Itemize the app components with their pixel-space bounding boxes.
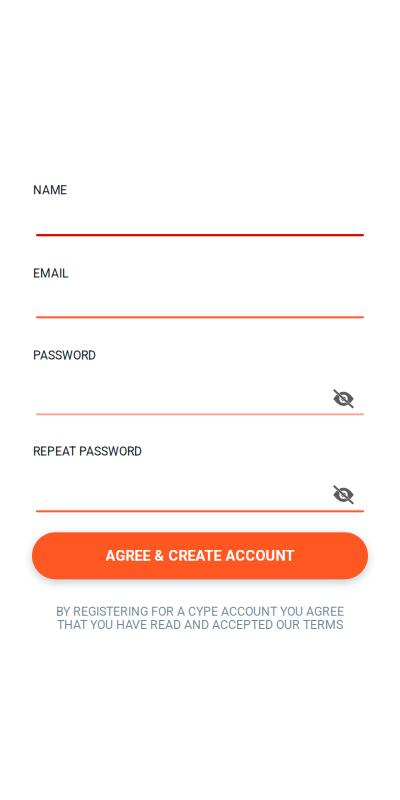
staticText: REPEAT PASSWORD bbox=[33, 444, 142, 458]
button[interactable]: REPEAT PASSWORD bbox=[36, 444, 364, 485]
staticText: BY REGISTERING FOR A CYPE ACCOUNT YOU AG… bbox=[56, 604, 344, 619]
button[interactable]: AGREE & CREATE ACCOUNT bbox=[32, 532, 368, 579]
staticText: NAME bbox=[33, 183, 67, 197]
button[interactable]: NAME bbox=[36, 183, 364, 236]
staticText: AGREE & CREATE ACCOUNT bbox=[105, 547, 294, 564]
button[interactable]: PASSWORD bbox=[36, 348, 364, 389]
button[interactable]: Show repeat password bbox=[321, 480, 364, 509]
button[interactable]: Show password bbox=[321, 384, 364, 413]
staticText: THAT YOU HAVE READ AND ACCEPTED OUR TERM… bbox=[57, 618, 343, 632]
button[interactable]: EMAIL bbox=[36, 266, 364, 318]
button[interactable]: BY REGISTERING FOR A CYPE ACCOUNT YOU AG… bbox=[56, 604, 344, 632]
staticText: EMAIL bbox=[33, 266, 68, 280]
staticText: PASSWORD bbox=[33, 348, 96, 362]
